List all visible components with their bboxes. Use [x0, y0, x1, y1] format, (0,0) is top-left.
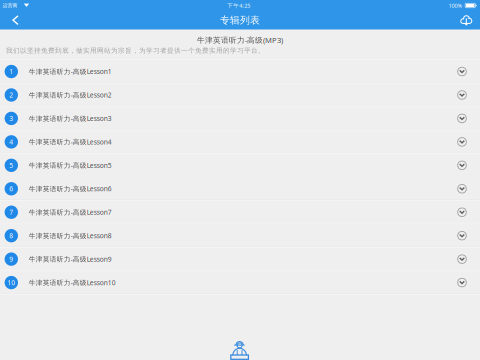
button[interactable]: 4	[0, 130, 480, 154]
staticText: 专辑列表	[220, 14, 260, 26]
button[interactable]: 7	[0, 201, 480, 224]
staticText: 5	[9, 161, 13, 170]
staticText: 牛津英语听力-高级Lesson4	[29, 137, 112, 146]
staticText: 2	[9, 90, 13, 99]
staticText: 运营商	[2, 2, 17, 9]
staticText: 100%	[448, 2, 462, 9]
button[interactable]: 下载	[450, 14, 480, 29]
staticText: 7	[9, 208, 13, 217]
staticText: 牛津英语听力-高级Lesson1	[29, 67, 112, 76]
button[interactable]: 2	[0, 83, 480, 107]
button[interactable]: 5	[0, 154, 480, 177]
staticText: 我们以坚持免费到底，做实用网站为宗旨，为学习者提供一个免费实用的学习平台。	[6, 46, 265, 55]
staticText: 牛津英语听力-高级Lesson3	[29, 114, 112, 123]
staticText: 牛津英语听力-高级Lesson2	[29, 90, 112, 99]
button[interactable]: 3	[0, 107, 480, 130]
staticText: 3	[9, 114, 13, 123]
button[interactable]: 10	[0, 271, 480, 294]
staticText: 9	[9, 255, 13, 264]
button[interactable]: 1	[0, 60, 480, 83]
staticText: 牛津英语听力-高级Lesson6	[29, 184, 112, 193]
staticText: 牛津英语听力-高级Lesson9	[29, 255, 112, 264]
button[interactable]: 8	[0, 224, 480, 248]
staticText: 8	[9, 231, 13, 240]
staticText: 牛津英语听力-高级Lesson10	[29, 278, 116, 287]
staticText: 6	[9, 184, 13, 193]
button[interactable]: 9	[0, 248, 480, 271]
staticText: 10	[7, 278, 15, 287]
button[interactable]: 6	[0, 177, 480, 201]
staticText: 牛津英语听力-高级Lesson7	[29, 208, 112, 217]
staticText: 下午4:25	[227, 2, 250, 9]
button[interactable]: 返回	[0, 14, 30, 29]
staticText: 1	[9, 67, 13, 76]
staticText: 牛津英语听力-高级Lesson8	[29, 231, 112, 240]
staticText: 牛津英语听力-高级Lesson5	[29, 161, 112, 170]
staticText: 牛津英语听力-高级(MP3)	[197, 35, 283, 45]
staticText: 4	[9, 137, 13, 146]
